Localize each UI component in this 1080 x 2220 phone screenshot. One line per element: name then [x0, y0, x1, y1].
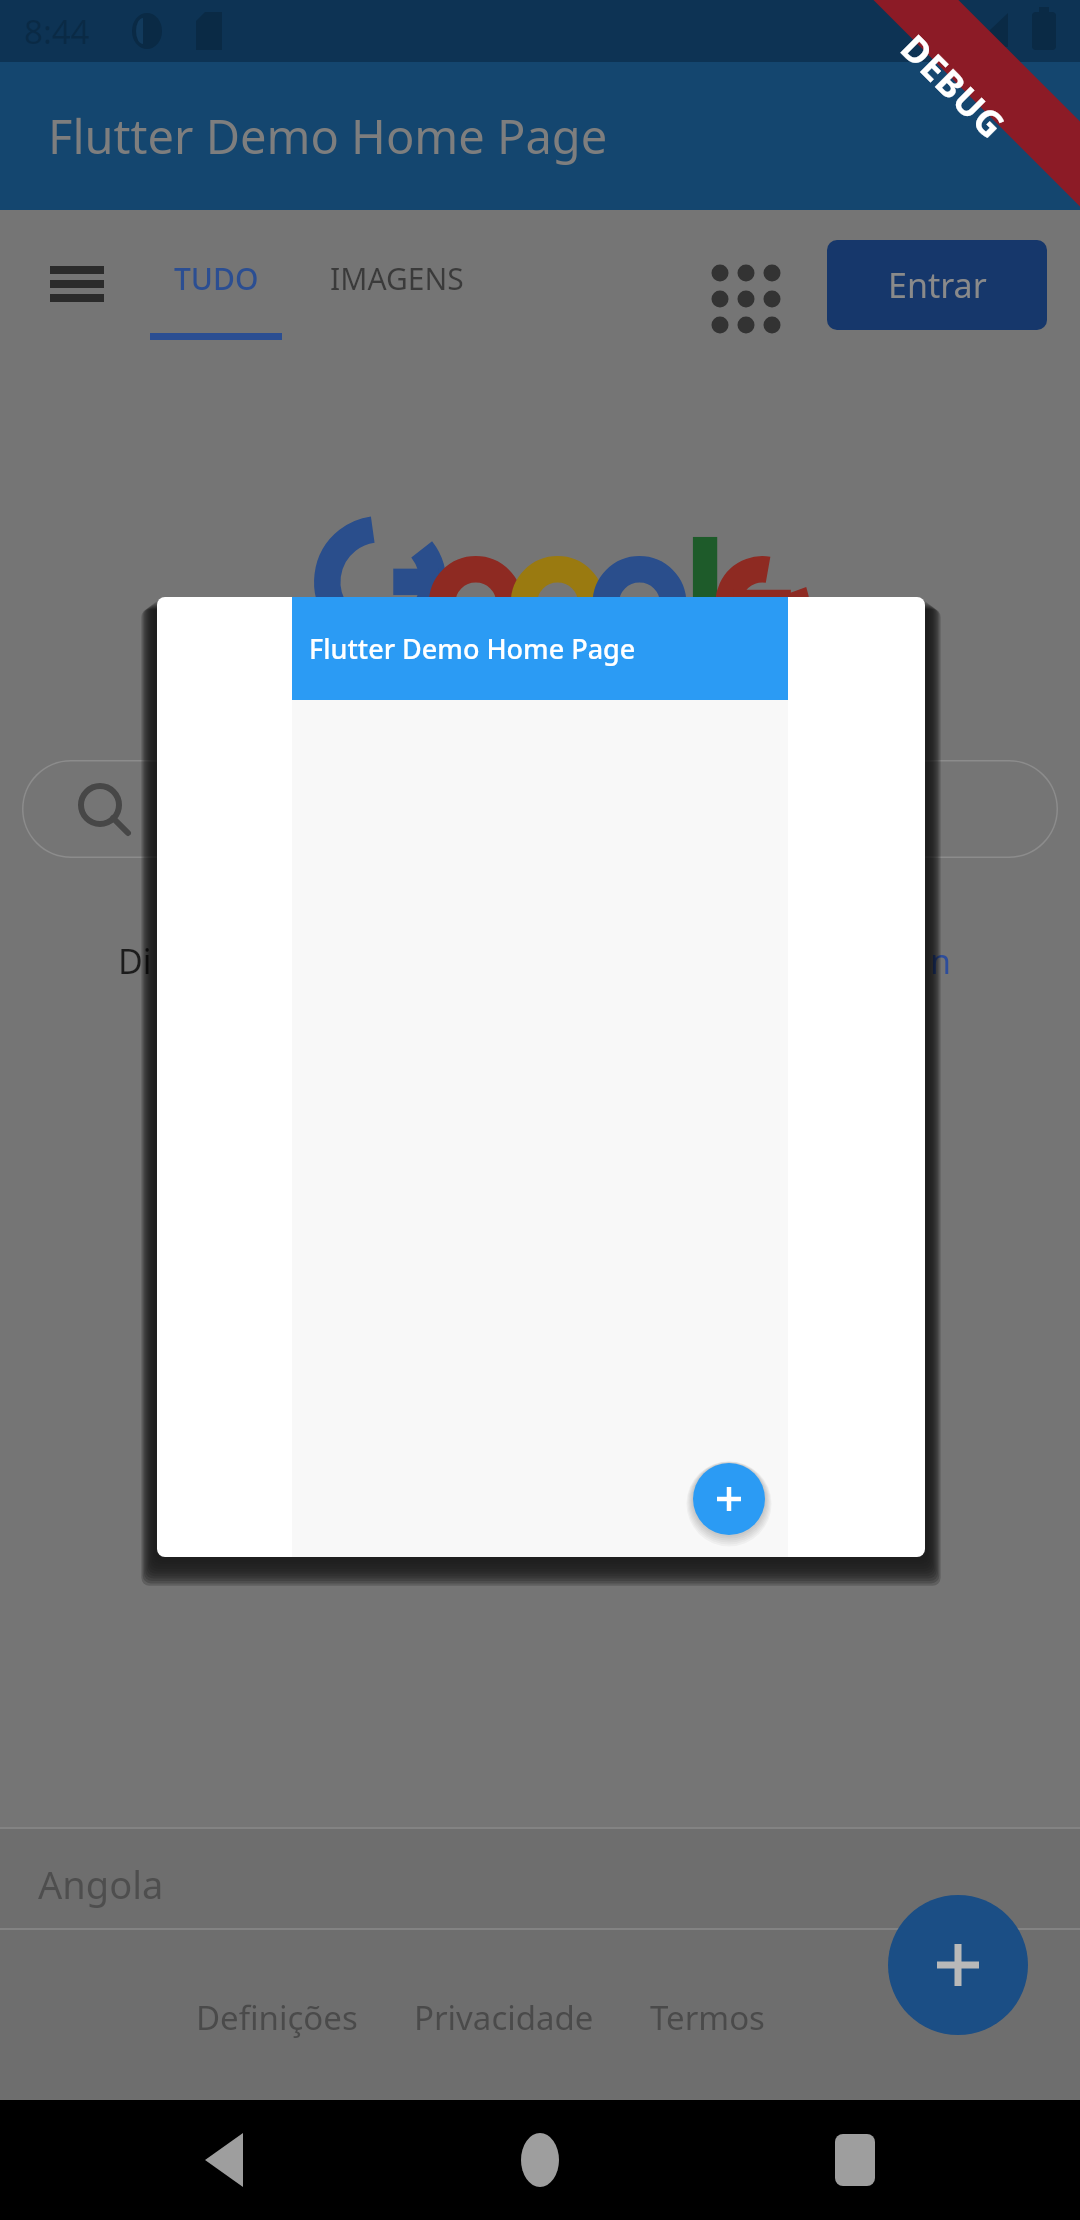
button[interactable]: TUDO	[150, 246, 282, 340]
staticText: TUDO	[174, 258, 259, 299]
button[interactable]: Privacidade	[386, 1985, 622, 2050]
staticText: IMAGENS	[330, 258, 464, 299]
staticText: Angola	[38, 1858, 164, 1910]
staticText: Flutter Demo Home Page	[309, 630, 636, 667]
button[interactable]: Increment	[888, 1895, 1028, 2035]
button[interactable]: Termos	[622, 1985, 793, 2050]
staticText: Flutter Demo Home Page	[48, 104, 608, 168]
button[interactable]: IMAGENS	[316, 246, 478, 311]
staticText: n	[930, 938, 952, 984]
staticText: Definições	[196, 1995, 358, 2040]
button[interactable]: Back	[180, 2115, 270, 2205]
staticText: Di	[118, 938, 152, 984]
button[interactable]: Menu	[45, 252, 109, 316]
button[interactable]: Increment	[693, 1463, 765, 1535]
button[interactable]: Recent apps	[810, 2115, 900, 2205]
button[interactable]: Google apps	[700, 253, 784, 337]
staticText: 8:44	[24, 9, 90, 54]
button[interactable]: Home	[495, 2115, 585, 2205]
button[interactable]: Definições	[168, 1985, 386, 2050]
staticText: Privacidade	[414, 1995, 594, 2040]
button[interactable]: Entrar	[827, 240, 1047, 330]
button[interactable]	[22, 760, 1058, 858]
staticText: Termos	[650, 1995, 765, 2040]
staticText: DEBUG	[891, 24, 1016, 149]
staticText: Entrar	[888, 262, 987, 308]
